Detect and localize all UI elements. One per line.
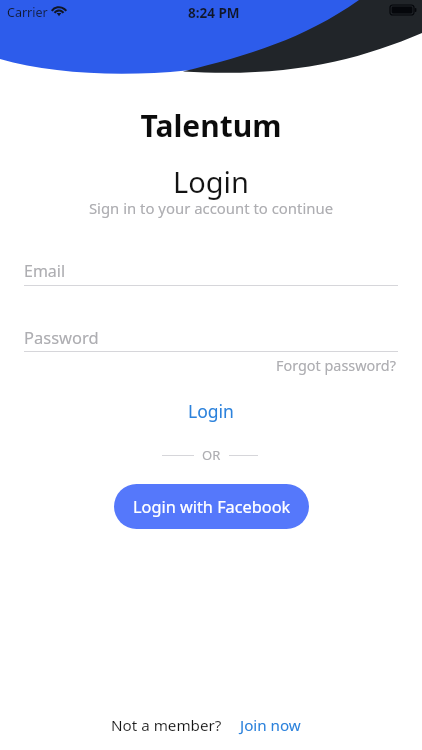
staticText: Password <box>24 326 99 348</box>
staticText: 8:24 PM <box>188 4 240 22</box>
staticText: Forgot password? <box>276 356 396 376</box>
staticText: Sign in to your account to continue <box>0 198 422 218</box>
staticText: Talentum <box>0 105 422 146</box>
staticText: Login <box>0 162 422 201</box>
button[interactable]: Forgot password? <box>268 353 404 379</box>
button[interactable]: Login with Facebook <box>114 484 309 529</box>
staticText: Not a member? <box>111 715 222 736</box>
staticText: Login <box>188 399 234 423</box>
button[interactable]: Password <box>24 323 398 352</box>
other: Wi-Fi signal <box>51 5 67 16</box>
staticText: Login with Facebook <box>133 496 291 518</box>
button[interactable]: Login <box>160 395 262 427</box>
button[interactable]: Join now <box>240 715 301 736</box>
staticText: Email <box>24 260 66 282</box>
staticText: Join now <box>240 715 301 736</box>
button[interactable]: Email <box>24 256 398 286</box>
staticText: Carrier <box>7 4 48 21</box>
staticText: OR <box>202 446 221 464</box>
other: Battery full <box>390 5 417 15</box>
